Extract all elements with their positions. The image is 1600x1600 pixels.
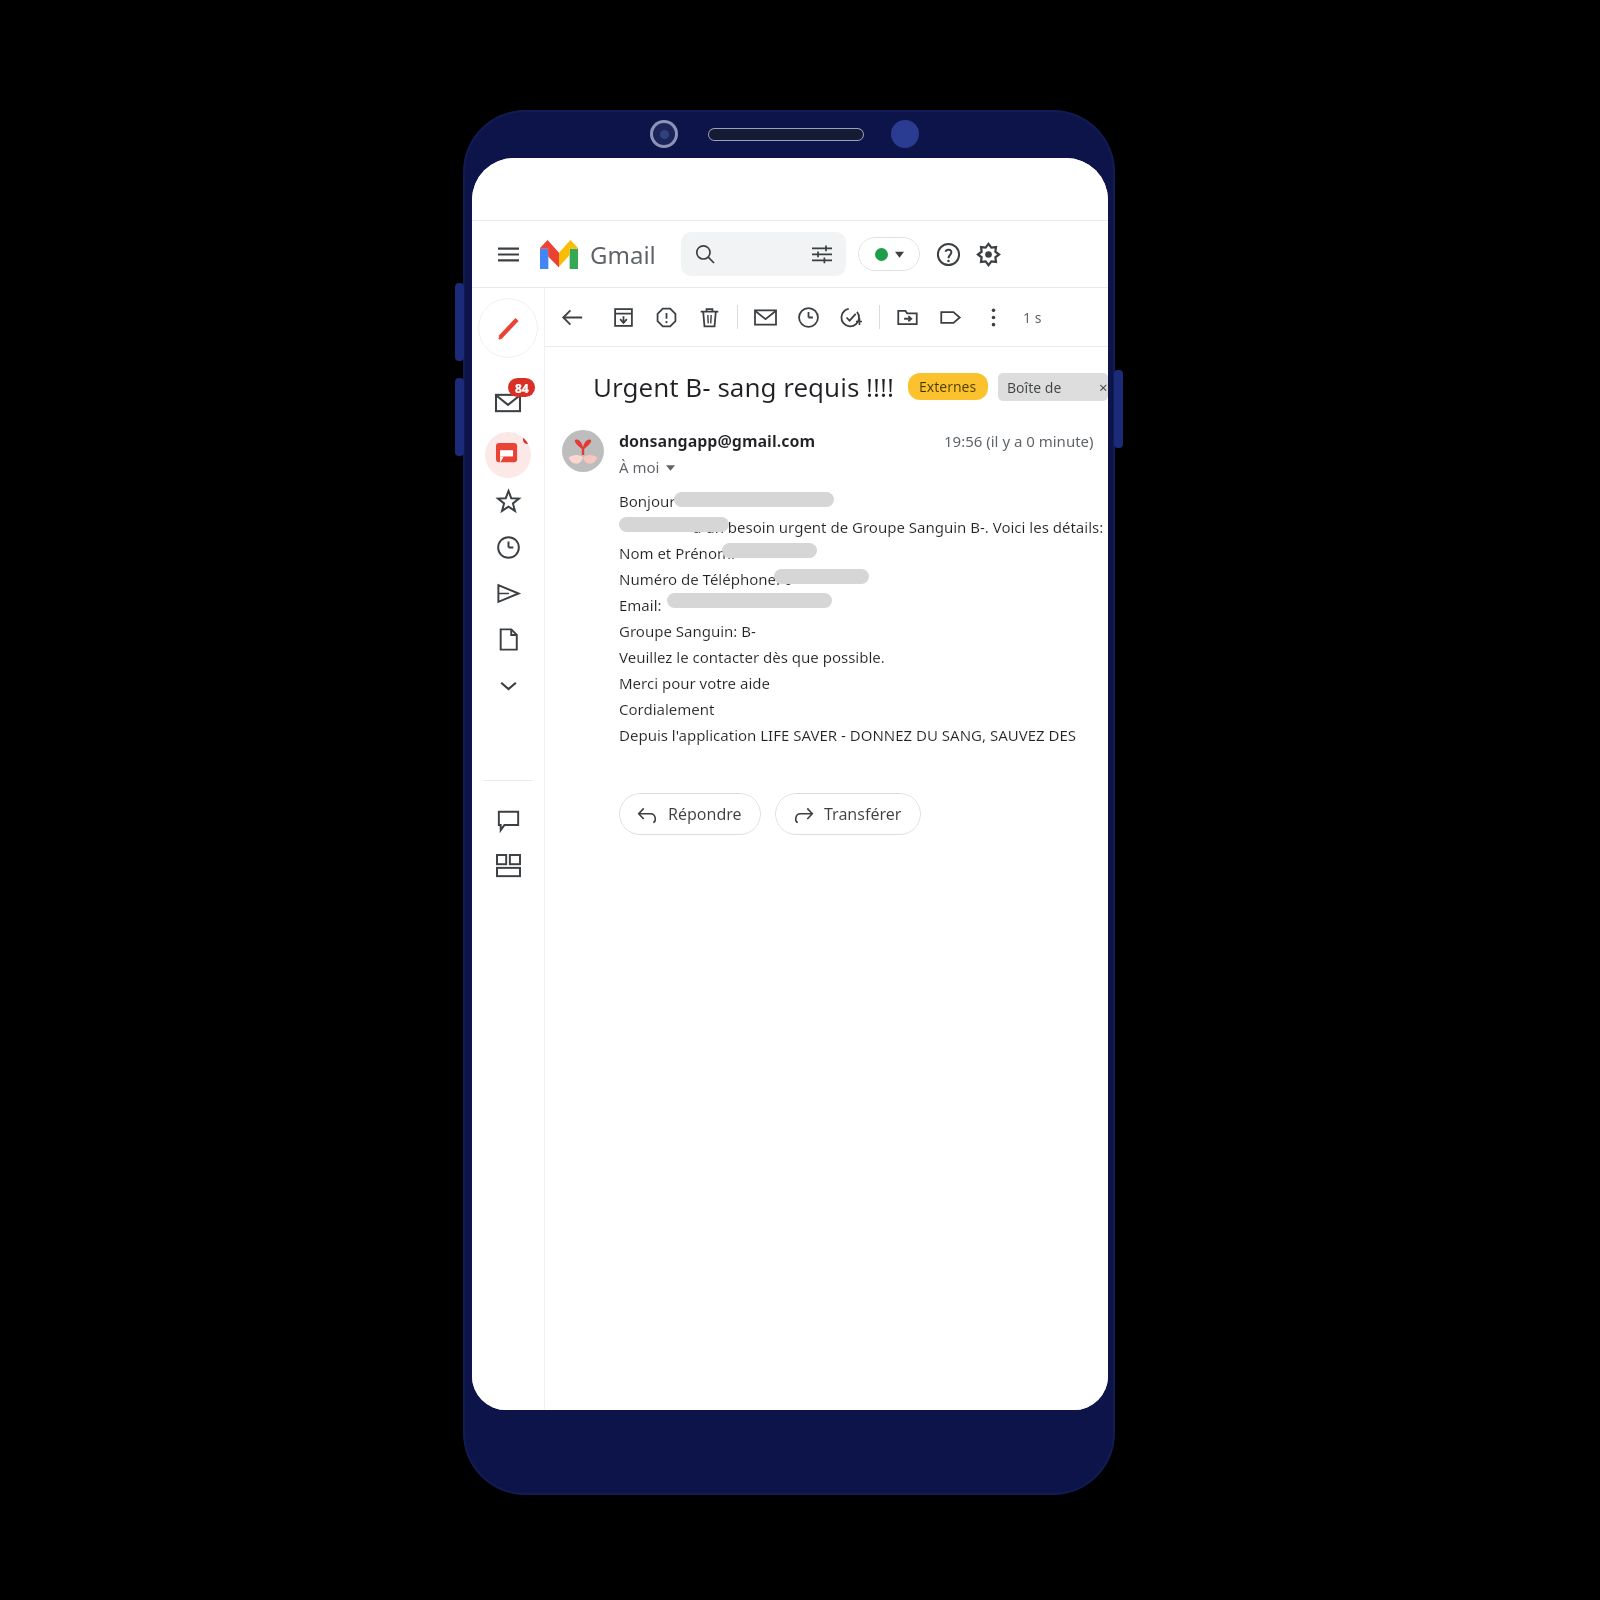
staticText: À moi <box>619 457 660 477</box>
button[interactable] <box>681 232 846 276</box>
button[interactable]: Aide <box>928 234 968 274</box>
staticText: Numéro de Téléphone: 0 <box>619 569 793 589</box>
staticText: Transférer <box>824 803 902 825</box>
staticText <box>666 595 768 615</box>
button[interactable]: Différer <box>787 296 830 339</box>
button[interactable]: Déplacer vers <box>886 296 929 339</box>
staticText: Depuis l'application LIFE SAVER - DONNEZ… <box>619 725 1108 745</box>
staticText: 1 s <box>1023 308 1042 327</box>
button[interactable]: Retour <box>551 296 594 339</box>
button[interactable]: Plus d'options <box>972 296 1015 339</box>
button[interactable]: Archiver <box>602 296 645 339</box>
button[interactable]: Libellés <box>929 296 972 339</box>
button[interactable]: Nouveau message <box>478 298 538 358</box>
staticText: Gmail <box>590 238 656 271</box>
button[interactable]: Plus <box>485 662 531 708</box>
button[interactable]: Brouillons <box>485 616 531 662</box>
button[interactable]: Répondre <box>619 793 761 835</box>
button[interactable]: Transférer <box>775 793 921 835</box>
staticText: Email: <box>619 595 666 615</box>
button[interactable]: Boîte de réception <box>485 380 531 426</box>
button[interactable]: Suivis <box>485 478 531 524</box>
button[interactable]: Externes <box>908 373 988 400</box>
button[interactable]: À moi <box>619 457 675 477</box>
button[interactable]: Signaler comme spam <box>645 296 688 339</box>
staticText: 19:56 (il y a 0 minute) <box>944 431 1094 451</box>
staticText: 84 <box>515 380 529 396</box>
button[interactable]: Chat <box>485 432 531 478</box>
button[interactable]: Applications <box>485 843 531 889</box>
button[interactable]: État : actif <box>858 237 920 271</box>
button[interactable]: Boîte de réception <box>998 373 1108 401</box>
staticText: Répondre <box>668 803 742 825</box>
staticText: donsangapp@gmail.com <box>619 430 816 452</box>
button[interactable]: Supprimer <box>688 296 731 339</box>
staticText: Bonjour <box>619 491 684 511</box>
staticText: Nom et Prénom: <box>619 543 739 563</box>
staticText: Veuillez le contacter dès que possible. <box>619 647 885 667</box>
staticText: Merci pour votre aide <box>619 673 770 693</box>
button[interactable]: Ajouter aux tâches <box>830 296 873 339</box>
staticText: Cordialement <box>619 699 715 719</box>
button[interactable]: Paramètres <box>968 234 1008 274</box>
button[interactable]: Menu principal <box>486 232 530 276</box>
staticText: Boîte de réception <box>1007 378 1099 397</box>
staticText: a un besoin urgent de Groupe Sanguin B-.… <box>619 517 1104 537</box>
staticText: Externes <box>919 377 977 396</box>
staticText: Groupe Sanguin: B- <box>619 621 756 641</box>
button[interactable]: Messages envoyés <box>485 570 531 616</box>
button[interactable]: Différés <box>485 524 531 570</box>
staticText: Urgent B- sang requis !!!! <box>593 369 895 404</box>
button[interactable]: Chat <box>485 797 531 843</box>
button[interactable]: Marquer comme non lu <box>744 296 787 339</box>
